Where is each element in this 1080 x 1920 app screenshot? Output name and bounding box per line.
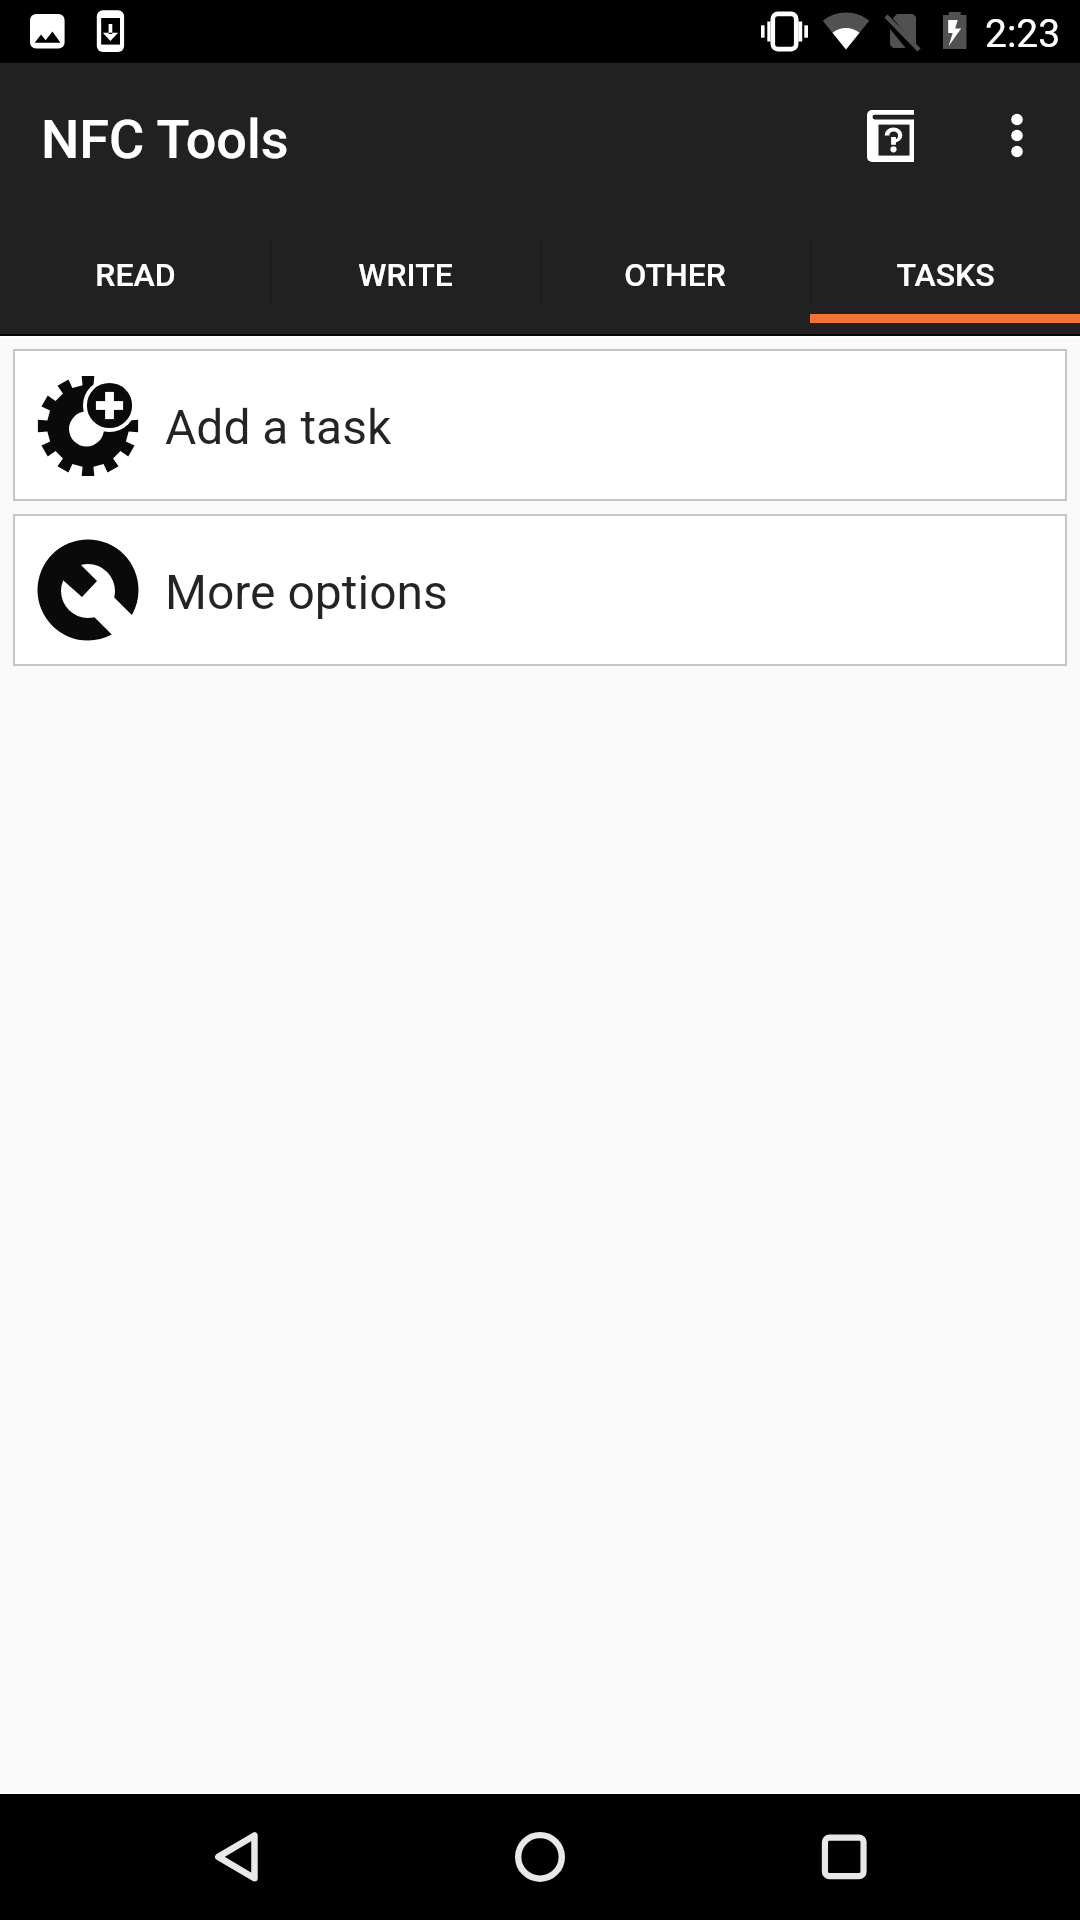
button[interactable]: OTHER (540, 214, 810, 334)
button[interactable]: READ (0, 214, 270, 334)
button[interactable]: Home (360, 1794, 720, 1920)
button[interactable]: More options (13, 514, 1067, 666)
staticText: WRITE (358, 256, 453, 294)
button[interactable]: More options menu (958, 63, 1076, 214)
button[interactable]: Help (836, 63, 945, 214)
button[interactable]: WRITE (270, 214, 540, 334)
staticText: More options (165, 564, 448, 620)
staticText: OTHER (624, 256, 726, 294)
staticText: 2:23 (985, 11, 1061, 57)
staticText: Add a task (165, 399, 392, 455)
button[interactable]: Recent apps (720, 1794, 1080, 1920)
staticText: TASKS (896, 256, 995, 294)
staticText: NFC Tools (41, 108, 289, 171)
button[interactable]: TASKS (810, 214, 1080, 334)
staticText: READ (95, 256, 176, 294)
button[interactable]: Add a task (13, 349, 1067, 501)
button[interactable]: Back (0, 1794, 360, 1920)
